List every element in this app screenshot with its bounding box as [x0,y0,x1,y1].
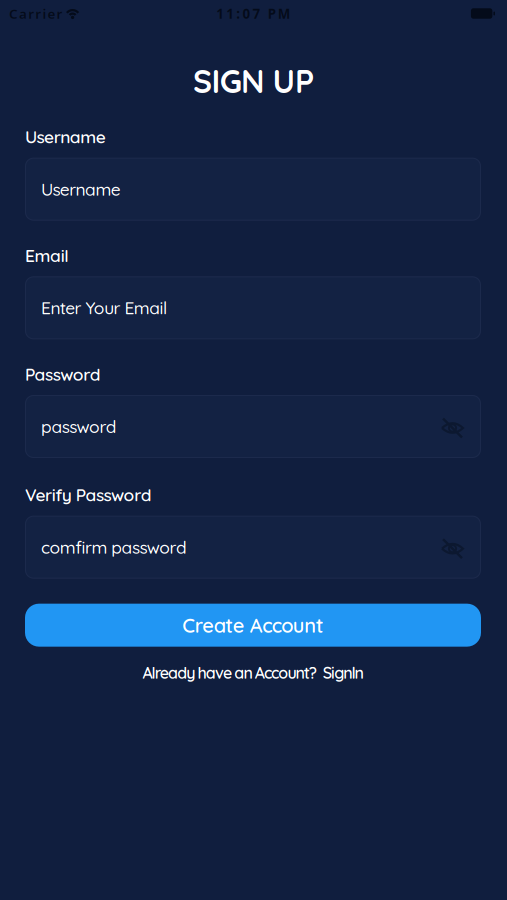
staticText: Already have an Account? [142,663,317,683]
staticText: i [42,5,46,22]
staticText: Username [41,178,121,200]
button[interactable]: password [25,395,481,458]
staticText: password [41,416,117,437]
staticText: Create Account [182,613,324,638]
staticText: e [47,5,55,22]
staticText: r [57,5,63,22]
button[interactable]: Show password [441,538,464,559]
staticText: SIGN UP [193,61,314,101]
staticText: 1 [226,5,234,22]
button[interactable]: Enter Your Email [25,276,481,339]
staticText: r [35,5,41,22]
staticText: Email [25,245,68,266]
button[interactable]: Show password [441,417,464,438]
staticText: Username [25,126,106,148]
button[interactable]: SignIn [323,663,364,683]
staticText: P [268,5,276,22]
staticText: SignIn [323,663,364,683]
staticText: comfirm password [41,536,187,558]
button[interactable]: Create Account [25,604,481,647]
staticText: M [278,5,291,22]
staticText: : [236,5,240,22]
staticText: 1 [216,5,224,22]
staticText: 7 [253,5,261,22]
staticText: r [28,5,34,22]
staticText: 0 [242,5,250,22]
staticText: Password [25,363,101,385]
button[interactable]: Username [25,158,481,221]
staticText: C [9,5,18,22]
button[interactable]: comfirm password [25,516,481,579]
staticText: Enter Your Email [41,297,167,319]
staticText: a [19,5,27,22]
staticText: Verify Password [25,484,152,506]
